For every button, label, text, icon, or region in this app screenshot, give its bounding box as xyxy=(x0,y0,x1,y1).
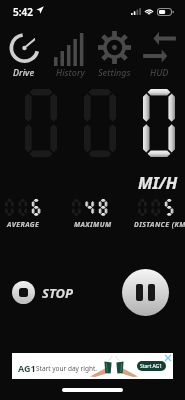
button[interactable]: Start AG1 xyxy=(137,361,166,371)
button[interactable]: Close ad xyxy=(165,355,171,361)
staticText: 5:42 xyxy=(13,5,33,19)
staticText: MAXIMUM xyxy=(74,220,112,230)
button[interactable]: Pause xyxy=(122,269,169,316)
staticText: Start your day right. xyxy=(36,364,98,373)
staticText: Drive xyxy=(13,66,35,78)
staticText: STOP xyxy=(42,284,73,302)
staticText: AVERAGE xyxy=(7,220,40,230)
staticText: Start AG1 xyxy=(140,363,163,370)
button[interactable]: Drive xyxy=(1,30,47,78)
staticText: MI/H xyxy=(138,171,178,193)
staticText: Settings xyxy=(98,66,131,78)
button[interactable]: STOP xyxy=(12,281,73,304)
button[interactable]: AG1 xyxy=(12,353,173,379)
button[interactable]: History xyxy=(47,30,93,78)
staticText: History xyxy=(56,66,85,78)
button[interactable]: HUD xyxy=(136,30,182,78)
button[interactable]: Settings xyxy=(91,30,137,78)
staticText: AG1 xyxy=(18,362,36,374)
staticText: DISTANCE (KM) xyxy=(134,220,185,230)
staticText: HUD xyxy=(150,66,169,78)
